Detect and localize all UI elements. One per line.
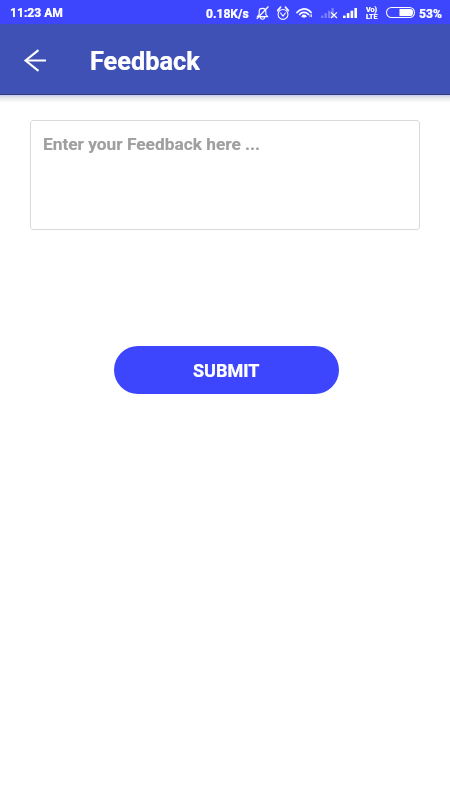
staticText: 11:23 AM: [10, 6, 63, 20]
button[interactable]: Enter your Feedback here ...: [30, 120, 420, 230]
staticText: Vo): [366, 5, 378, 13]
button[interactable]: SUBMIT: [114, 346, 339, 394]
staticText: 0.18K/s: [206, 7, 249, 21]
button[interactable]: Back: [14, 38, 56, 80]
staticText: LTE: [366, 12, 378, 20]
staticText: Feedback: [90, 47, 200, 77]
staticText: Enter your Feedback here ...: [43, 134, 261, 154]
staticText: 53%: [419, 7, 442, 21]
staticText: SUBMIT: [193, 360, 260, 381]
